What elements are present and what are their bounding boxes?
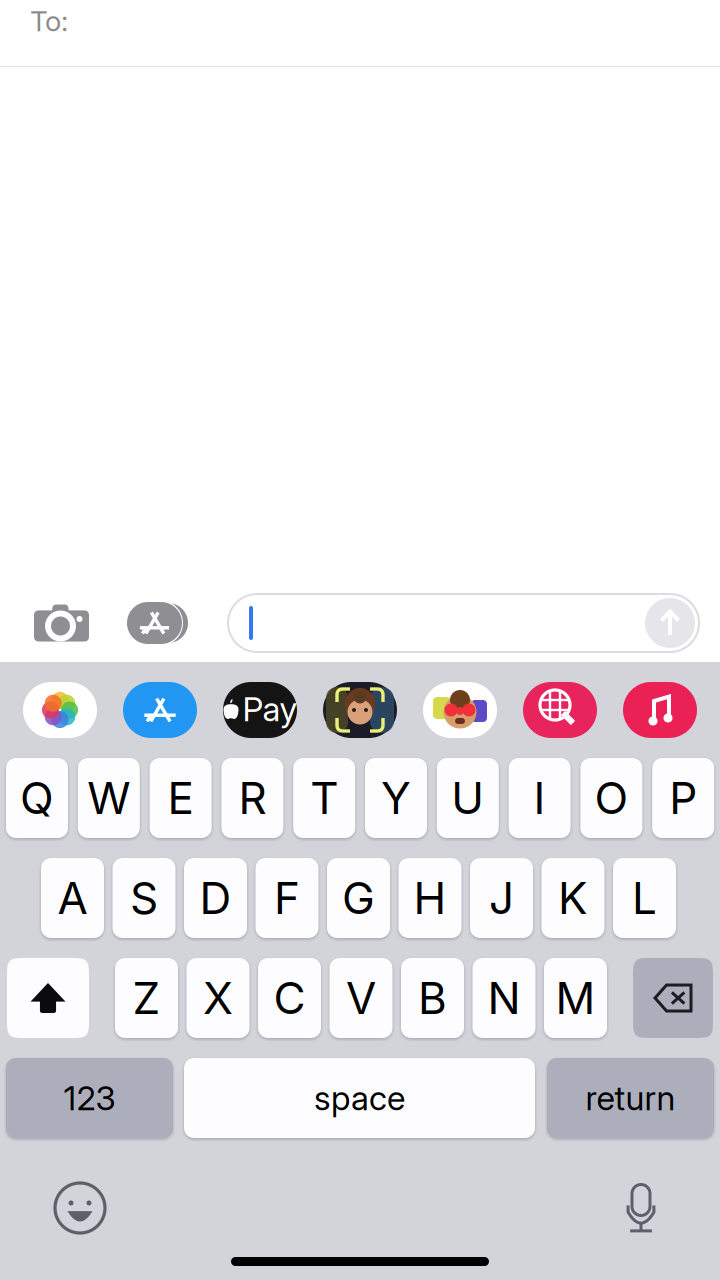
staticText: K — [558, 871, 588, 925]
button[interactable]: Emoji — [30, 1171, 130, 1245]
staticText: 123 — [63, 1078, 115, 1118]
button[interactable]: Photos — [10, 662, 110, 758]
staticText: F — [274, 871, 300, 925]
button[interactable]: Apps — [111, 584, 205, 662]
button[interactable]: V — [329, 958, 392, 1038]
button[interactable]: Shift — [7, 958, 89, 1038]
button[interactable]: P — [652, 758, 714, 838]
staticText: G — [342, 871, 375, 925]
button[interactable]: Music — [610, 662, 710, 758]
button[interactable]: J — [470, 858, 533, 938]
button[interactable]: I — [509, 758, 571, 838]
button[interactable]: return — [547, 1058, 714, 1138]
staticText: V — [346, 971, 376, 1025]
button[interactable]: Z — [115, 958, 178, 1038]
staticText: P — [669, 771, 697, 825]
staticText: O — [594, 771, 628, 825]
staticText: L — [632, 871, 657, 925]
staticText: T — [310, 771, 338, 825]
staticText: R — [238, 771, 266, 825]
button[interactable]: Dictation — [591, 1171, 691, 1245]
button[interactable]: Camera — [12, 584, 111, 662]
button[interactable]: Apple Pay — [210, 662, 310, 758]
button[interactable]: G — [327, 858, 390, 938]
button[interactable]: O — [580, 758, 642, 838]
button[interactable]: D — [184, 858, 247, 938]
button[interactable]: A — [41, 858, 104, 938]
staticText: H — [413, 871, 446, 925]
button[interactable]: R — [221, 758, 283, 838]
staticText: To: — [30, 4, 68, 38]
staticText: A — [57, 871, 87, 925]
staticText: space — [314, 1078, 405, 1118]
staticText: Pay — [242, 689, 297, 729]
staticText: I — [534, 771, 546, 825]
button[interactable]: Images — [510, 662, 610, 758]
staticText: J — [489, 871, 514, 925]
button[interactable]: App Store — [110, 662, 210, 758]
button[interactable]: C — [258, 958, 321, 1038]
button[interactable]: E — [150, 758, 212, 838]
staticText: U — [451, 771, 484, 825]
staticText: B — [418, 971, 447, 1025]
staticText: W — [87, 771, 130, 825]
button[interactable]: Stickers — [410, 662, 510, 758]
button[interactable]: Q — [6, 758, 68, 838]
button[interactable]: U — [437, 758, 499, 838]
staticText: M — [555, 971, 595, 1025]
staticText: Y — [381, 771, 411, 825]
button[interactable]: F — [255, 858, 318, 938]
button[interactable]: L — [613, 858, 676, 938]
button[interactable]: 123 — [6, 1058, 173, 1138]
button[interactable]: Memoji — [310, 662, 410, 758]
button[interactable]: W — [78, 758, 140, 838]
button[interactable]: K — [541, 858, 604, 938]
staticText: X — [203, 971, 233, 1025]
button[interactable]: Delete — [633, 958, 713, 1038]
staticText: Q — [20, 771, 54, 825]
staticText: E — [168, 771, 194, 825]
button[interactable]: Y — [365, 758, 427, 838]
button[interactable]: B — [401, 958, 464, 1038]
staticText: return — [585, 1078, 675, 1118]
button[interactable]: S — [112, 858, 175, 938]
button[interactable]: space — [184, 1058, 535, 1138]
button[interactable]: M — [544, 958, 607, 1038]
button[interactable]: N — [472, 958, 535, 1038]
staticText: D — [199, 871, 231, 925]
staticText: N — [487, 971, 520, 1025]
button[interactable]: H — [398, 858, 461, 938]
staticText: Z — [132, 971, 160, 1025]
button[interactable]: T — [293, 758, 355, 838]
staticText: S — [130, 871, 158, 925]
button[interactable]: X — [186, 958, 249, 1038]
staticText: C — [273, 971, 305, 1025]
